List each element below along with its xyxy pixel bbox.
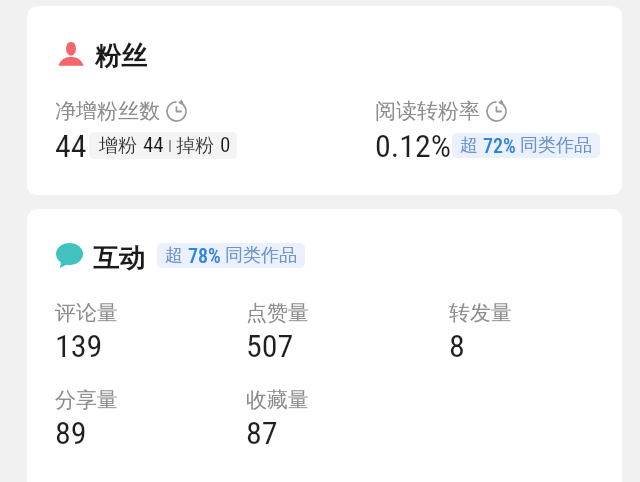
button[interactable]: 转发量 xyxy=(449,300,599,364)
staticText: 点赞量 xyxy=(246,300,309,326)
staticText: 44 xyxy=(55,127,87,163)
staticText: 阅读转粉率 xyxy=(375,98,480,124)
staticText: 净增粉丝数 xyxy=(55,98,160,124)
staticText: 掉粉 xyxy=(176,134,214,158)
staticText: 超 xyxy=(165,244,183,267)
button[interactable]: 评论量 xyxy=(55,300,205,364)
staticText: 增粉 xyxy=(99,134,137,158)
staticText: 507 xyxy=(246,327,294,365)
button[interactable]: 分享量 xyxy=(55,387,205,451)
staticText: 评论量 xyxy=(55,300,118,326)
staticText: 72% xyxy=(483,134,516,157)
staticText: 转发量 xyxy=(449,300,512,326)
staticText: 8 xyxy=(449,327,465,365)
button[interactable]: 增粉 xyxy=(89,132,237,159)
button[interactable]: 超 xyxy=(452,133,600,158)
staticText: 139 xyxy=(55,327,103,365)
staticText: 87 xyxy=(246,414,278,452)
staticText: 78% xyxy=(188,244,221,267)
staticText: 粉丝 xyxy=(95,40,147,73)
staticText: 同类作品 xyxy=(520,134,592,157)
staticText: 互动 xyxy=(93,242,145,275)
staticText: 0 xyxy=(220,133,231,158)
button[interactable]: 历史数据 xyxy=(486,101,507,122)
staticText: 44 xyxy=(143,133,164,158)
staticText: 0.12% xyxy=(375,127,452,163)
button[interactable]: 收藏量 xyxy=(246,387,396,451)
staticText: 同类作品 xyxy=(225,244,297,267)
button[interactable]: 超 xyxy=(157,243,305,268)
staticText: 超 xyxy=(460,134,478,157)
button[interactable]: 历史数据 xyxy=(166,101,187,122)
staticText: 分享量 xyxy=(55,387,118,413)
staticText: 89 xyxy=(55,414,87,452)
staticText: 收藏量 xyxy=(246,387,309,413)
button[interactable]: 点赞量 xyxy=(246,300,396,364)
